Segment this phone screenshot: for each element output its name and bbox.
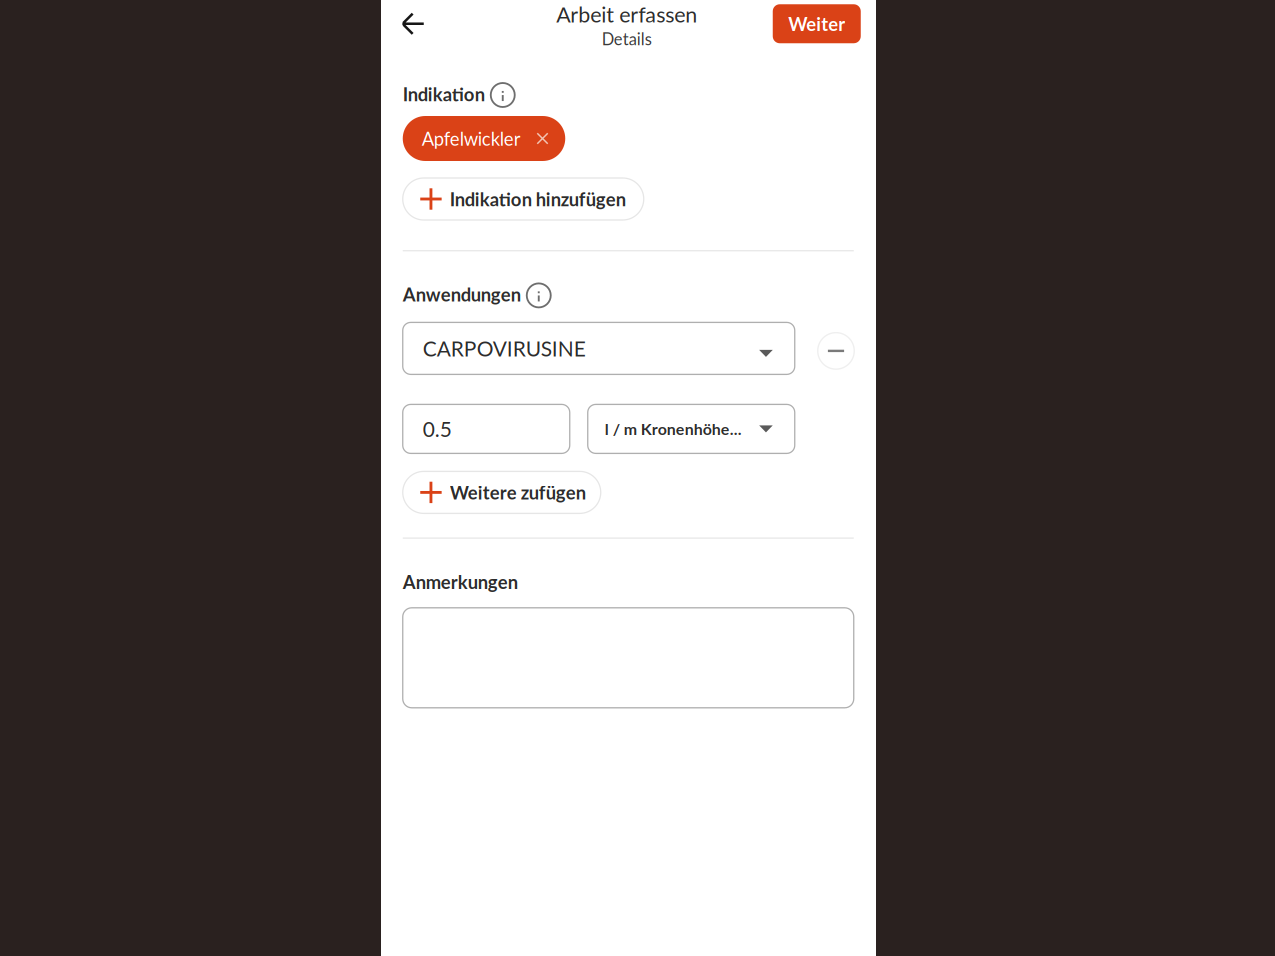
staticText: Indikation hinzufügen <box>450 188 626 210</box>
staticText: Details <box>602 29 652 49</box>
staticText: CARPOVIRUSINE <box>423 336 586 361</box>
button[interactable]: Info zu Anwendungen <box>527 283 551 307</box>
staticText: Weiter <box>788 13 845 35</box>
staticText: 0.5 <box>423 416 452 441</box>
staticText: l / m Kronenhöhe... <box>605 419 742 438</box>
button[interactable]: Weiter <box>773 1 861 43</box>
button[interactable]: Anwendung entfernen <box>818 328 854 369</box>
staticText: Arbeit erfassen <box>556 1 697 27</box>
button[interactable]: Apfelwickler <box>403 116 565 161</box>
button[interactable]: Weitere zufügen <box>403 471 601 513</box>
button[interactable]: l / m Kronenhöhe... <box>588 404 795 453</box>
staticText: Weitere zufügen <box>450 481 586 503</box>
button[interactable]: Anmerkungen eingeben <box>403 608 854 708</box>
staticText: Apfelwickler <box>422 127 521 149</box>
button[interactable]: Zurück <box>393 4 438 41</box>
staticText: Anmerkungen <box>403 571 518 593</box>
button[interactable]: Indikation hinzufügen <box>403 178 644 220</box>
staticText: Indikation <box>403 83 485 105</box>
button[interactable]: 0.5 <box>403 404 570 453</box>
staticText: Anwendungen <box>403 283 521 305</box>
button[interactable]: CARPOVIRUSINE <box>403 322 795 374</box>
button[interactable]: Info zu Indikation <box>491 83 515 107</box>
